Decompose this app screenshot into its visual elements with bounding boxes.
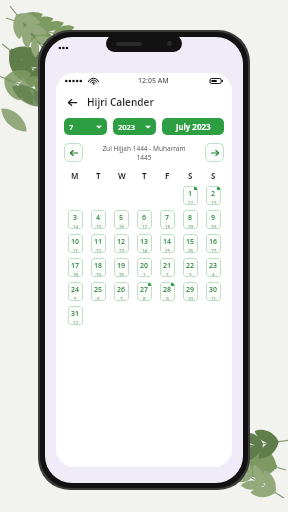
button[interactable]: 2023 xyxy=(113,118,156,135)
staticText: 23 xyxy=(209,261,218,271)
button[interactable]: 7 xyxy=(64,118,107,135)
button[interactable]: 14 xyxy=(160,234,175,253)
staticText: 17 xyxy=(142,224,148,229)
button[interactable]: 31 xyxy=(68,306,83,325)
staticText: 15 xyxy=(96,224,102,229)
staticText: S xyxy=(211,170,216,181)
staticText: 12 xyxy=(117,237,126,247)
staticText: 3 xyxy=(189,272,192,277)
staticText: 1 xyxy=(188,189,193,199)
staticText: 25 xyxy=(94,285,103,295)
staticText: 21 xyxy=(163,261,172,271)
staticText: 1 xyxy=(143,272,146,277)
button[interactable]: 11 xyxy=(91,234,106,253)
staticText: 27 xyxy=(211,248,217,253)
staticText: 9 xyxy=(211,213,216,223)
staticText: 14 xyxy=(163,237,172,247)
button[interactable]: 25 xyxy=(91,282,106,301)
button[interactable]: 29 xyxy=(183,282,198,301)
staticText: W xyxy=(118,170,126,181)
button[interactable]: 10 xyxy=(68,234,83,253)
staticText: 22 xyxy=(96,248,102,253)
staticText: 10 xyxy=(188,296,194,301)
staticText: 12:05 AM xyxy=(138,76,169,86)
button[interactable]: 30 xyxy=(206,282,221,301)
staticText: July 2023 xyxy=(176,121,211,132)
staticText: 20 xyxy=(211,224,217,229)
staticText: 27 xyxy=(140,285,149,295)
button[interactable]: 26 xyxy=(114,282,129,301)
button[interactable]: 15 xyxy=(183,234,198,253)
staticText: 22 xyxy=(186,261,195,271)
staticText: 11 xyxy=(211,296,217,301)
button[interactable]: 17 xyxy=(68,258,83,277)
staticText: T xyxy=(142,170,147,181)
staticText: 6 xyxy=(142,213,147,223)
button[interactable]: Next month xyxy=(205,143,224,162)
button[interactable]: Back xyxy=(64,94,80,110)
staticText: 6 xyxy=(97,296,100,301)
button[interactable]: 20 xyxy=(137,258,152,277)
button[interactable]: 18 xyxy=(91,258,106,277)
staticText: 8 xyxy=(143,296,146,301)
staticText: S xyxy=(188,170,193,181)
staticText: 2023 xyxy=(118,122,136,132)
button[interactable]: 13 xyxy=(137,234,152,253)
staticText: M xyxy=(71,170,79,181)
staticText: 20 xyxy=(140,261,149,271)
staticText: 15 xyxy=(186,237,195,247)
staticText: 18 xyxy=(94,261,103,271)
button[interactable]: 6 xyxy=(137,210,152,229)
staticText: 5 xyxy=(119,213,124,223)
button[interactable]: 16 xyxy=(206,234,221,253)
button[interactable]: 8 xyxy=(183,210,198,229)
staticText: 30 xyxy=(209,285,218,295)
staticText: 7 xyxy=(165,213,170,223)
staticText: 16 xyxy=(119,224,125,229)
staticText: 5 xyxy=(74,296,77,301)
staticText: Zul Hijjah 1444 - Muharram 1445 xyxy=(102,144,186,162)
button[interactable]: 4 xyxy=(91,210,106,229)
button[interactable]: 24 xyxy=(68,282,83,301)
button[interactable]: 7 xyxy=(160,210,175,229)
staticText: 23 xyxy=(119,248,125,253)
button[interactable]: 21 xyxy=(160,258,175,277)
staticText: 25 xyxy=(165,248,171,253)
staticText: 17 xyxy=(71,261,80,271)
staticText: 7 xyxy=(69,122,74,132)
staticText: 12 xyxy=(188,200,194,205)
button[interactable]: 27 xyxy=(137,282,152,301)
staticText: 2 xyxy=(166,272,169,277)
staticText: 13 xyxy=(211,200,217,205)
staticText: 4 xyxy=(212,272,215,277)
staticText: 7 xyxy=(120,296,123,301)
button[interactable]: 22 xyxy=(183,258,198,277)
staticText: 29 xyxy=(186,285,195,295)
staticText: 8 xyxy=(188,213,193,223)
button[interactable]: 12 xyxy=(114,234,129,253)
staticText: T xyxy=(96,170,101,181)
staticText: 11 xyxy=(94,237,103,247)
staticText: 30 xyxy=(119,272,125,277)
staticText: 10 xyxy=(71,237,80,247)
button[interactable]: 23 xyxy=(206,258,221,277)
button[interactable]: 28 xyxy=(160,282,175,301)
staticText: 19 xyxy=(117,261,126,271)
button[interactable]: 2 xyxy=(206,186,221,205)
button[interactable]: 3 xyxy=(68,210,83,229)
staticText: 13 xyxy=(140,237,149,247)
staticText: 18 xyxy=(165,224,171,229)
staticText: 19 xyxy=(188,224,194,229)
staticText: 21 xyxy=(73,248,79,253)
staticText: 2 xyxy=(211,189,216,199)
button[interactable]: 5 xyxy=(114,210,129,229)
button[interactable]: 1 xyxy=(183,186,198,205)
button[interactable]: Previous month xyxy=(64,143,83,162)
staticText: 3 xyxy=(73,213,78,223)
button[interactable]: 19 xyxy=(114,258,129,277)
staticText: 28 xyxy=(73,272,79,277)
button[interactable]: July 2023 xyxy=(162,118,224,135)
staticText: Hijri Calender xyxy=(87,95,154,109)
staticText: 9 xyxy=(166,296,169,301)
button[interactable]: 9 xyxy=(206,210,221,229)
